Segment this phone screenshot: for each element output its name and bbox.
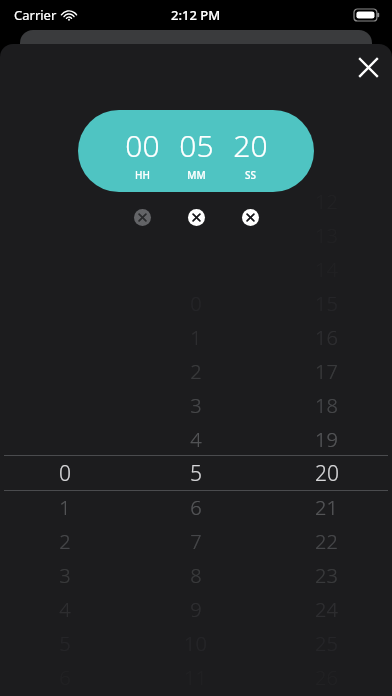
staticText: 6 xyxy=(190,494,202,521)
staticText: 2 xyxy=(59,528,71,555)
button[interactable]: 00 xyxy=(78,110,314,192)
staticText: SS xyxy=(245,168,256,182)
staticText: 9 xyxy=(190,596,202,623)
staticText: 3 xyxy=(190,392,202,419)
staticText: 21 xyxy=(315,494,338,521)
button[interactable]: Clear seconds xyxy=(223,202,277,232)
staticText: 24 xyxy=(315,596,338,623)
staticText: 20 xyxy=(315,459,339,488)
staticText: 1 xyxy=(59,494,71,521)
staticText: 17 xyxy=(315,358,338,385)
staticText: MM xyxy=(187,168,206,182)
staticText: 8 xyxy=(190,562,202,589)
button[interactable]: Minutes xyxy=(130,44,261,696)
staticText: 4 xyxy=(190,426,202,453)
staticText: 00 xyxy=(125,125,160,166)
staticText: 3 xyxy=(59,562,71,589)
staticText: 2 xyxy=(190,358,202,385)
button[interactable]: Close xyxy=(345,44,391,90)
staticText: 18 xyxy=(315,392,338,419)
staticText: 16 xyxy=(315,324,338,351)
staticText: 22 xyxy=(315,528,338,555)
staticText: 20 xyxy=(233,125,268,166)
button[interactable]: Seconds xyxy=(261,44,392,696)
button[interactable]: Clear hours xyxy=(115,202,169,232)
staticText: 05 xyxy=(179,125,214,166)
staticText: 1 xyxy=(190,324,202,351)
staticText: HH xyxy=(135,168,150,182)
staticText: 7 xyxy=(190,528,202,555)
staticText: 4 xyxy=(59,596,71,623)
staticText: 19 xyxy=(315,426,338,453)
staticText: Carrier xyxy=(14,6,57,24)
button[interactable]: Hours xyxy=(0,44,130,696)
button[interactable]: Clear minutes xyxy=(169,202,223,232)
staticText: 23 xyxy=(315,562,338,589)
staticText: 5 xyxy=(190,459,202,488)
staticText: 0 xyxy=(59,459,71,488)
staticText: 2:12 PM xyxy=(171,6,221,24)
